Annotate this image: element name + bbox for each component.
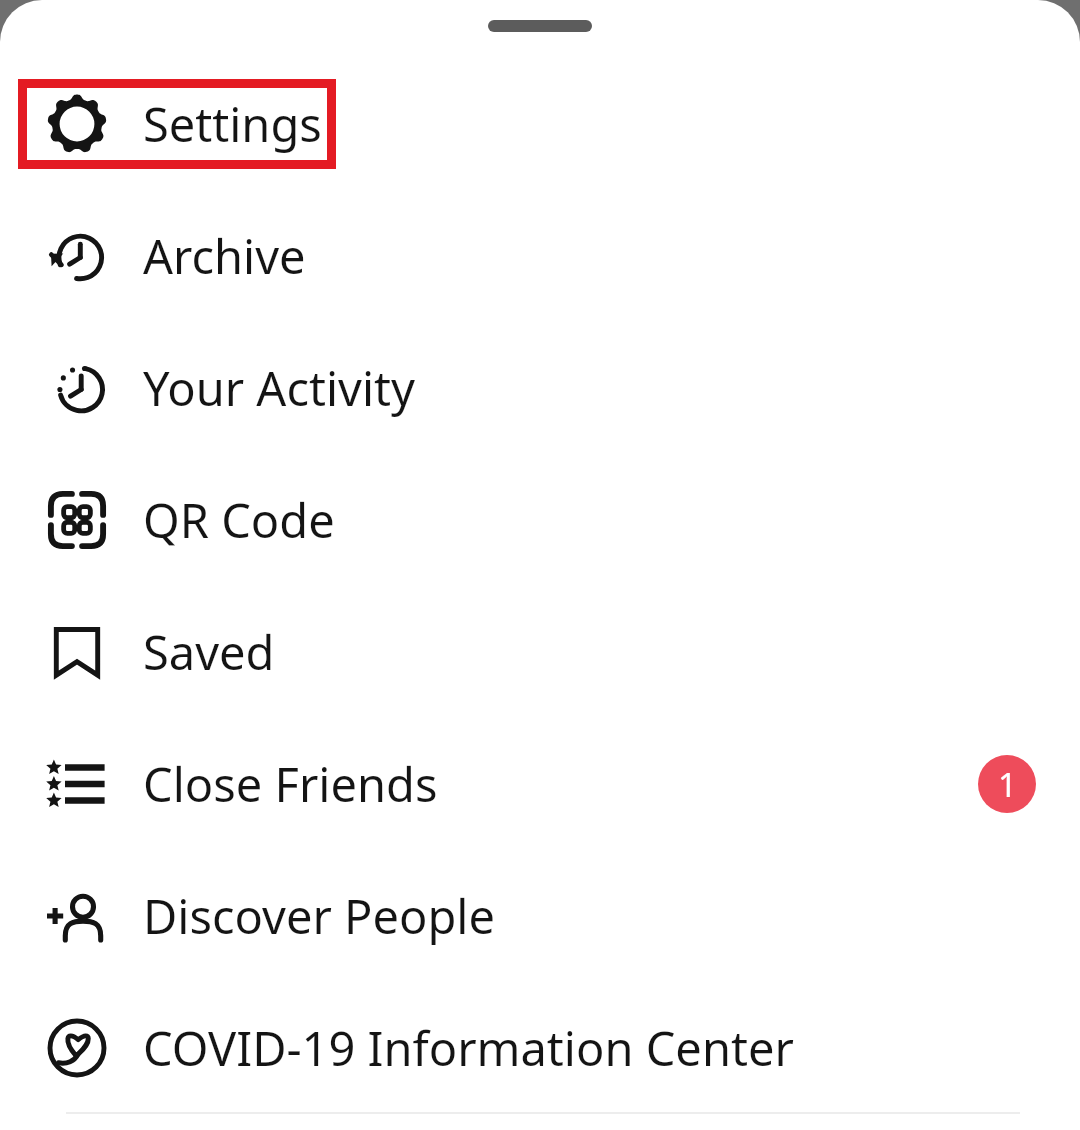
staticText: Discover People [143, 884, 495, 948]
button[interactable]: COVID-19 Information Center [0, 982, 1080, 1114]
staticText: Saved [143, 620, 275, 684]
staticText: COVID-19 Information Center [143, 1016, 794, 1080]
staticText: 1 [998, 762, 1017, 807]
staticText: QR Code [143, 488, 335, 552]
staticText: Your Activity [143, 356, 415, 420]
button[interactable]: Discover People [0, 850, 1080, 982]
staticText: Archive [143, 224, 306, 288]
button[interactable]: Settings [0, 58, 1080, 190]
staticText: Close Friends [143, 752, 438, 816]
button[interactable]: QR Code [0, 454, 1080, 586]
button[interactable]: Your Activity [0, 322, 1080, 454]
staticText: Settings [143, 92, 322, 156]
button[interactable]: Saved [0, 586, 1080, 718]
button[interactable]: Archive [0, 190, 1080, 322]
button[interactable]: Close Friends [0, 718, 1080, 850]
